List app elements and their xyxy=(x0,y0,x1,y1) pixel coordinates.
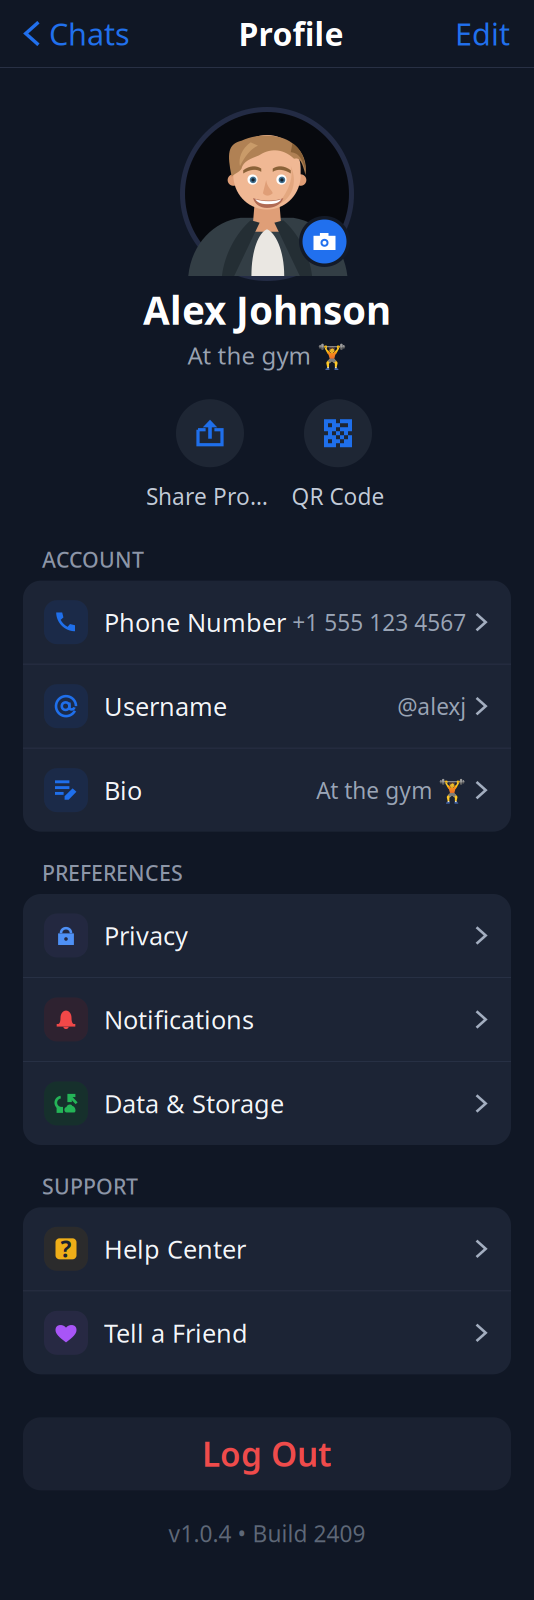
button[interactable]: ? xyxy=(23,1207,511,1290)
button[interactable]: Chats xyxy=(24,4,130,63)
staticText: Privacy xyxy=(104,919,188,952)
staticText: SUPPORT xyxy=(42,1172,138,1200)
staticText: @alexj xyxy=(397,691,466,721)
staticText: Phone Number xyxy=(104,605,286,639)
staticText: v1.0.4 • Build 2409 xyxy=(168,1518,365,1548)
staticText: +1 555 123 4567 xyxy=(292,607,466,637)
button[interactable]: Data & Storage xyxy=(23,1062,511,1145)
staticText: ACCOUNT xyxy=(42,545,144,574)
button[interactable]: Edit xyxy=(455,4,510,63)
staticText: Profile xyxy=(238,12,343,55)
button[interactable]: Username xyxy=(23,665,511,748)
button[interactable]: Notifications xyxy=(23,978,511,1061)
button[interactable]: Log Out xyxy=(0,1374,534,1490)
staticText: Log Out xyxy=(202,1432,332,1476)
staticText: Tell a Friend xyxy=(104,1316,248,1350)
staticText: Username xyxy=(104,689,227,723)
button[interactable]: Privacy xyxy=(23,894,511,977)
staticText: Chats xyxy=(49,13,130,54)
staticText: ? xyxy=(60,1234,71,1264)
staticText: Notifications xyxy=(104,1003,254,1036)
button[interactable]: Phone Number xyxy=(23,581,511,664)
button[interactable]: Share Profile xyxy=(146,399,274,511)
staticText: Edit xyxy=(455,13,510,54)
staticText: Help Center xyxy=(104,1232,246,1266)
staticText: PREFERENCES xyxy=(42,859,183,887)
staticText: At the gym 🏋 xyxy=(187,339,346,371)
staticText: Alex Johnson xyxy=(143,284,391,335)
button[interactable]: Bio xyxy=(23,749,511,832)
button[interactable]: Change profile photo xyxy=(299,216,350,267)
staticText: Share Profile xyxy=(146,481,274,511)
staticText: At the gym 🏋 xyxy=(316,775,466,805)
button[interactable]: QR Code xyxy=(274,399,402,511)
button[interactable]: Tell a Friend xyxy=(23,1291,511,1374)
staticText: Bio xyxy=(104,773,142,807)
staticText: Data & Storage xyxy=(104,1087,284,1120)
staticText: QR Code xyxy=(291,481,384,511)
